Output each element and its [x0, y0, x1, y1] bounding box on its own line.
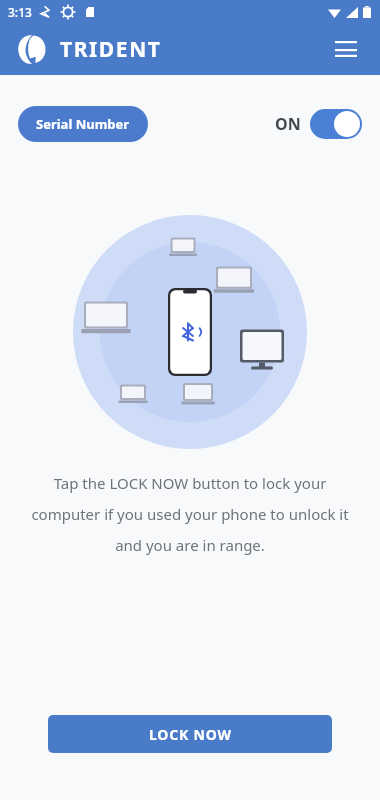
button[interactable]: Menu	[324, 27, 368, 71]
staticText: Serial Number	[36, 115, 130, 133]
staticText: 3:13	[8, 4, 32, 20]
button[interactable]: LOCK NOW	[48, 715, 332, 753]
button[interactable]: Serial Number	[18, 106, 148, 142]
staticText: LOCK NOW	[149, 725, 232, 744]
staticText: Tap the LOCK NOW button to lock your com…	[30, 473, 350, 556]
staticText: ON	[275, 113, 301, 135]
staticText: TRIDENT	[60, 35, 162, 64]
button[interactable]: ON	[275, 109, 362, 139]
